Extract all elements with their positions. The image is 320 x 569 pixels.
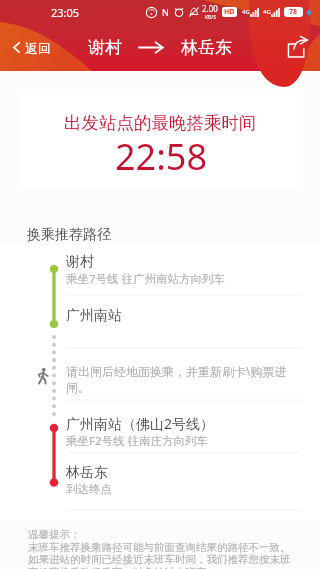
staticText: 23:05: [51, 5, 80, 20]
button[interactable]: 广州南站（佛山2号线）: [66, 414, 302, 449]
staticText: 谢村: [66, 253, 94, 271]
staticText: 乘坐7号线 往广州南站方向列车: [66, 271, 226, 287]
staticText: 78: [289, 7, 298, 17]
button[interactable]: 林岳东: [66, 464, 302, 496]
staticText: HD: [224, 7, 235, 17]
staticText: 22:58: [115, 132, 208, 181]
staticText: 林岳东: [66, 464, 108, 482]
button[interactable]: Share: [274, 24, 320, 70]
staticText: 4G: [263, 8, 271, 16]
button[interactable]: 返回: [6, 24, 57, 71]
staticText: 换乘推荐路径: [27, 226, 111, 244]
staticText: 4G: [242, 8, 250, 16]
staticText: 请出闸后经地面换乘，并重新刷卡\购票进闸。: [66, 363, 298, 396]
staticText: N: [162, 6, 169, 18]
staticText: 谢村: [88, 37, 122, 58]
staticText: 到达终点: [66, 482, 112, 496]
staticText: 温馨提示：: [28, 528, 81, 541]
staticText: KB/S: [205, 14, 216, 21]
staticText: 2.00: [202, 3, 218, 14]
staticText: 末班车推荐换乘路径可能与前面查询结果的路径不一致。如果进站的时间已经接近末班车时…: [28, 541, 294, 569]
staticText: 林岳东: [181, 37, 232, 58]
staticText: 广州南站（佛山2号线）: [66, 414, 215, 433]
button[interactable]: 广州南站: [66, 307, 302, 325]
staticText: 出发站点的最晚搭乘时间: [64, 112, 257, 134]
button[interactable]: 出发站点的最晚搭乘时间: [18, 90, 303, 189]
button[interactable]: 谢村: [66, 253, 302, 287]
staticText: 广州南站: [66, 307, 122, 325]
staticText: 乘坐F2号线 往南庄方向列车: [66, 433, 209, 449]
staticText: 返回: [25, 40, 51, 56]
